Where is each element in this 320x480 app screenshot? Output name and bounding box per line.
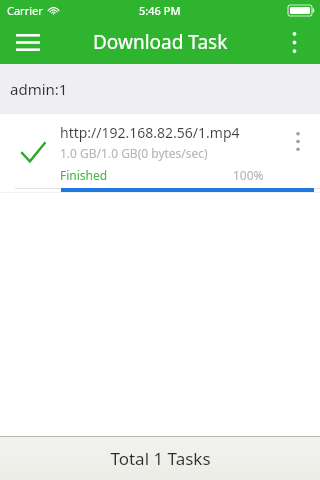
staticText: 5:46 PM [139,3,181,18]
button[interactable]: Task options [280,122,316,160]
staticText: Finished [60,167,108,183]
button[interactable]: http://192.168.82.56/1.mp4 [0,114,320,192]
staticText: Download Task [93,29,228,55]
staticText: 100% [233,167,264,183]
staticText: 1.0 GB/1.0 GB(0 bytes/sec) [60,145,208,161]
staticText: admin:1 [10,79,68,99]
staticText: Carrier [7,3,43,18]
staticText: http://192.168.82.56/1.mp4 [60,123,240,142]
button[interactable]: Menu [6,20,50,64]
button[interactable]: admin:1 [0,64,320,114]
button[interactable]: More options [272,20,316,64]
button[interactable]: Total 1 Tasks [0,437,320,480]
staticText: Total 1 Tasks [110,447,211,470]
